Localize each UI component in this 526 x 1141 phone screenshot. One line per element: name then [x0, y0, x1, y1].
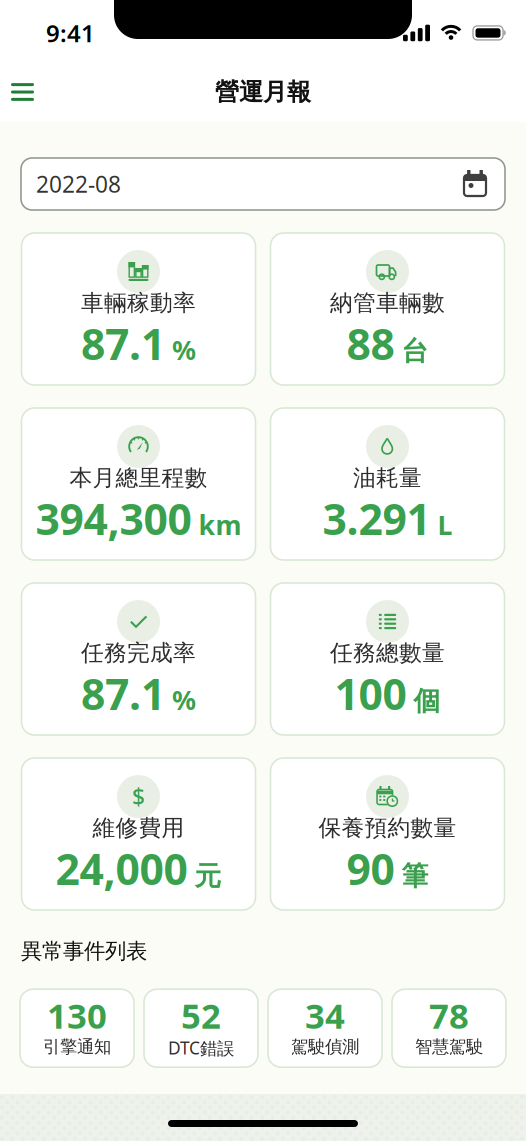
staticText: 394,300 [35, 490, 191, 547]
staticText: 保養預約數量 [318, 814, 456, 842]
staticText: 引擎通知 [43, 1036, 111, 1057]
staticText: 100 [334, 665, 406, 722]
staticText: $ [132, 781, 145, 811]
staticText: 筆 [401, 860, 428, 892]
button[interactable]: Select month [21, 158, 505, 210]
staticText: 130 [47, 992, 107, 1038]
staticText: 任務總數量 [330, 639, 445, 667]
staticText: % [172, 682, 196, 717]
staticText: 90 [346, 840, 394, 897]
staticText: km [198, 507, 241, 542]
staticText: 87.1 [81, 315, 165, 372]
staticText: 車輛稼動率 [81, 289, 196, 317]
staticText: 本月總里程數 [69, 464, 207, 492]
staticText: 24,000 [55, 840, 187, 897]
staticText: 87.1 [81, 665, 165, 722]
staticText: % [172, 332, 196, 367]
staticText: 元 [194, 860, 221, 892]
staticText: 2022-08 [36, 169, 121, 199]
staticText: 駕駛偵測 [291, 1036, 359, 1057]
staticText: DTC錯誤 [168, 1036, 234, 1059]
staticText: 個 [413, 685, 440, 717]
staticText: 維修費用 [92, 814, 184, 842]
staticText: L [437, 507, 452, 542]
button[interactable]: 52 [144, 989, 258, 1067]
staticText: 52 [181, 992, 221, 1038]
staticText: 智慧駕駛 [415, 1036, 483, 1057]
button[interactable]: 34 [268, 989, 382, 1067]
button[interactable]: 78 [392, 989, 506, 1067]
staticText: 台 [401, 335, 428, 367]
staticText: 油耗量 [353, 464, 422, 492]
staticText: 納管車輛數 [330, 289, 445, 317]
staticText: 34 [305, 992, 345, 1038]
staticText: 異常事件列表 [21, 938, 147, 964]
staticText: 9:41 [46, 17, 95, 49]
staticText: 3.291 [322, 490, 430, 547]
staticText: 88 [346, 315, 394, 372]
staticText: 任務完成率 [81, 639, 196, 667]
staticText: 營運月報 [215, 77, 311, 107]
button[interactable]: Menu [0, 73, 34, 111]
button[interactable]: 130 [20, 989, 134, 1067]
staticText: 78 [429, 992, 469, 1038]
